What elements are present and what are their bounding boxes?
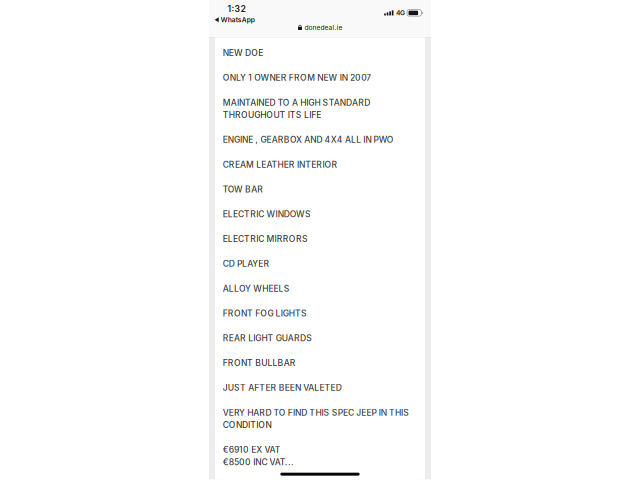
staticText: ALLOY WHEELS <box>223 283 290 294</box>
staticText: donedeal.ie <box>304 24 342 32</box>
staticText: REAR LIGHT GUARDS <box>223 333 312 343</box>
staticText: CONDITION <box>223 420 271 430</box>
staticText: THROUGHOUT ITS LIFE <box>223 110 321 120</box>
staticText: FRONT BULLBAR <box>223 358 296 368</box>
staticText: NEW DOE <box>223 48 263 58</box>
button[interactable]: Back to WhatsApp <box>213 15 257 24</box>
staticText: 4G <box>396 9 405 17</box>
staticText: TOW BAR <box>223 184 263 194</box>
staticText: €6910 EX VAT <box>223 445 281 455</box>
staticText: JUST AFTER BEEN VALETED <box>223 383 342 393</box>
staticText: CD PLAYER <box>223 259 269 269</box>
staticText: ELECTRIC WINDOWS <box>223 209 311 219</box>
button[interactable]: Address: donedeal.ie <box>290 23 350 33</box>
staticText: VERY HARD TO FIND THIS SPEC JEEP IN THIS <box>223 407 409 418</box>
staticText: €8500 INC VAT... <box>223 457 294 467</box>
staticText: ELECTRIC MIRRORS <box>223 234 308 244</box>
staticText: ONLY 1 OWNER FROM NEW IN 2007 <box>223 73 371 83</box>
staticText: 1:32 <box>227 4 245 14</box>
staticText: FRONT FOG LIGHTS <box>223 308 307 318</box>
staticText: CREAM LEATHER INTERIOR <box>223 159 338 170</box>
staticText: ENGINE , GEARBOX AND 4X4 ALL IN PWO <box>223 135 394 145</box>
staticText: WhatsApp <box>221 16 255 24</box>
staticText: MAINTAINED TO A HIGH STANDARD <box>223 97 370 108</box>
